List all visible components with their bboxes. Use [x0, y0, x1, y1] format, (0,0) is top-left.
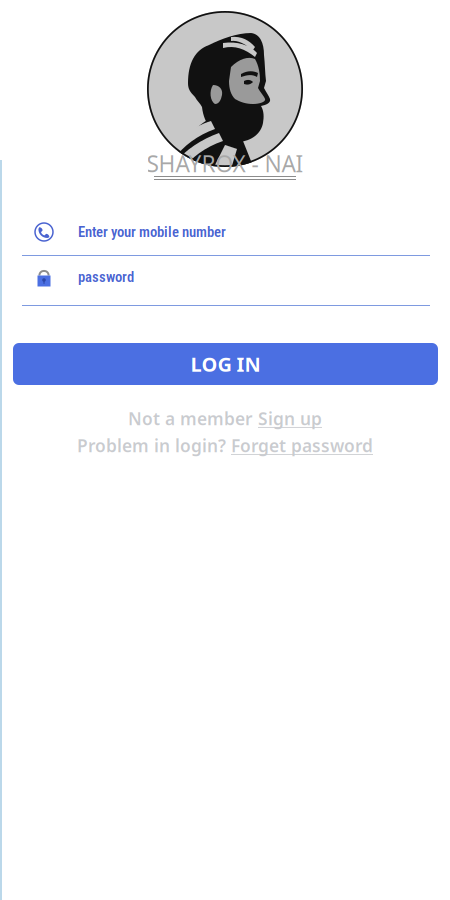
- button[interactable]: Forget password: [231, 434, 373, 457]
- staticText: SHAYROX - NAI: [146, 148, 303, 178]
- staticText: Enter your mobile number: [78, 223, 226, 241]
- staticText: LOG IN: [190, 351, 260, 377]
- button[interactable]: password: [0, 265, 450, 306]
- button[interactable]: Enter your mobile number: [0, 222, 450, 256]
- staticText: Forget password: [231, 434, 373, 457]
- button[interactable]: Sign up: [258, 407, 322, 430]
- staticText: password: [78, 268, 134, 286]
- staticText: Problem in login?: [77, 434, 226, 457]
- staticText: Not a member: [128, 407, 253, 430]
- button[interactable]: LOG IN: [13, 343, 438, 385]
- staticText: Sign up: [258, 407, 322, 430]
